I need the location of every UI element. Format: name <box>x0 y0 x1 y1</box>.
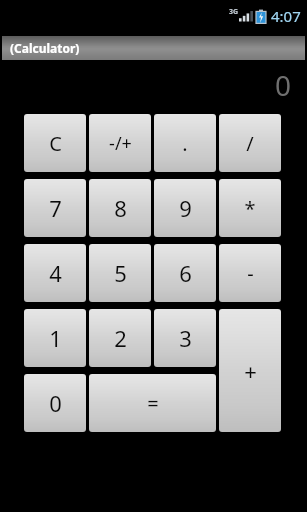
staticText: 4:07 <box>271 6 301 26</box>
staticText: - <box>247 260 254 287</box>
staticText: 8 <box>114 193 127 223</box>
staticText: = <box>147 390 159 417</box>
button[interactable]: 9 <box>154 179 216 237</box>
button[interactable]: 3 <box>154 309 216 367</box>
staticText: 3 <box>179 323 192 353</box>
staticText: 6 <box>179 258 192 288</box>
button[interactable]: 4 <box>24 244 86 302</box>
button[interactable]: 1 <box>24 309 86 367</box>
button[interactable]: 0 <box>24 374 86 432</box>
button[interactable]: - <box>219 244 281 302</box>
staticText: 1 <box>49 323 62 353</box>
staticText: 7 <box>49 193 62 223</box>
other: Signal strength <box>239 9 251 23</box>
button[interactable]: . <box>154 114 216 172</box>
staticText: * <box>244 195 256 222</box>
button[interactable]: = <box>89 374 216 432</box>
staticText: + <box>244 356 257 386</box>
button[interactable]: 2 <box>89 309 151 367</box>
staticText: C <box>49 130 62 157</box>
button[interactable]: 5 <box>89 244 151 302</box>
staticText: 0 <box>274 66 291 104</box>
staticText: (Calculator) <box>10 40 80 56</box>
staticText: 5 <box>114 258 127 288</box>
staticText: 3G <box>229 7 239 17</box>
button[interactable]: + <box>219 309 281 432</box>
staticText: 0 <box>49 388 62 418</box>
staticText: . <box>182 130 188 157</box>
button[interactable]: 6 <box>154 244 216 302</box>
staticText: -/+ <box>109 131 132 156</box>
staticText: 9 <box>179 193 192 223</box>
button[interactable]: C <box>24 114 86 172</box>
staticText: 4 <box>49 258 62 288</box>
other: Battery charging <box>256 9 266 24</box>
button[interactable]: 7 <box>24 179 86 237</box>
button[interactable]: * <box>219 179 281 237</box>
button[interactable]: 8 <box>89 179 151 237</box>
staticText: / <box>246 130 254 157</box>
button[interactable]: / <box>219 114 281 172</box>
staticText: 2 <box>114 323 127 353</box>
button[interactable]: -/+ <box>89 114 151 172</box>
